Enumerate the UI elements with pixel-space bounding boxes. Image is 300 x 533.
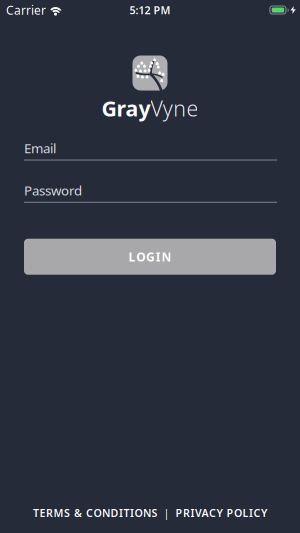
button[interactable]: TERMS & CONDITIONS	[33, 506, 157, 520]
staticText: |	[157, 506, 175, 520]
button[interactable]: Email	[0, 139, 300, 160]
staticText: TERMS & CONDITIONS	[33, 506, 157, 520]
staticText: Password	[24, 181, 82, 199]
staticText: PRIVACY POLICY	[175, 506, 267, 520]
staticText: O	[136, 249, 145, 265]
staticText: Gray	[102, 94, 151, 122]
button[interactable]: Password	[0, 181, 300, 203]
staticText: Carrier	[6, 2, 46, 18]
staticText: Vyne	[151, 94, 198, 122]
staticText: G	[146, 249, 155, 265]
staticText: 5:12 PM	[129, 3, 170, 17]
staticText: Email	[24, 139, 56, 157]
button[interactable]: PRIVACY POLICY	[175, 506, 267, 520]
staticText: I	[156, 249, 161, 265]
staticText: L	[128, 249, 135, 265]
button[interactable]: LOGIN	[0, 239, 300, 275]
staticText: N	[162, 249, 172, 265]
